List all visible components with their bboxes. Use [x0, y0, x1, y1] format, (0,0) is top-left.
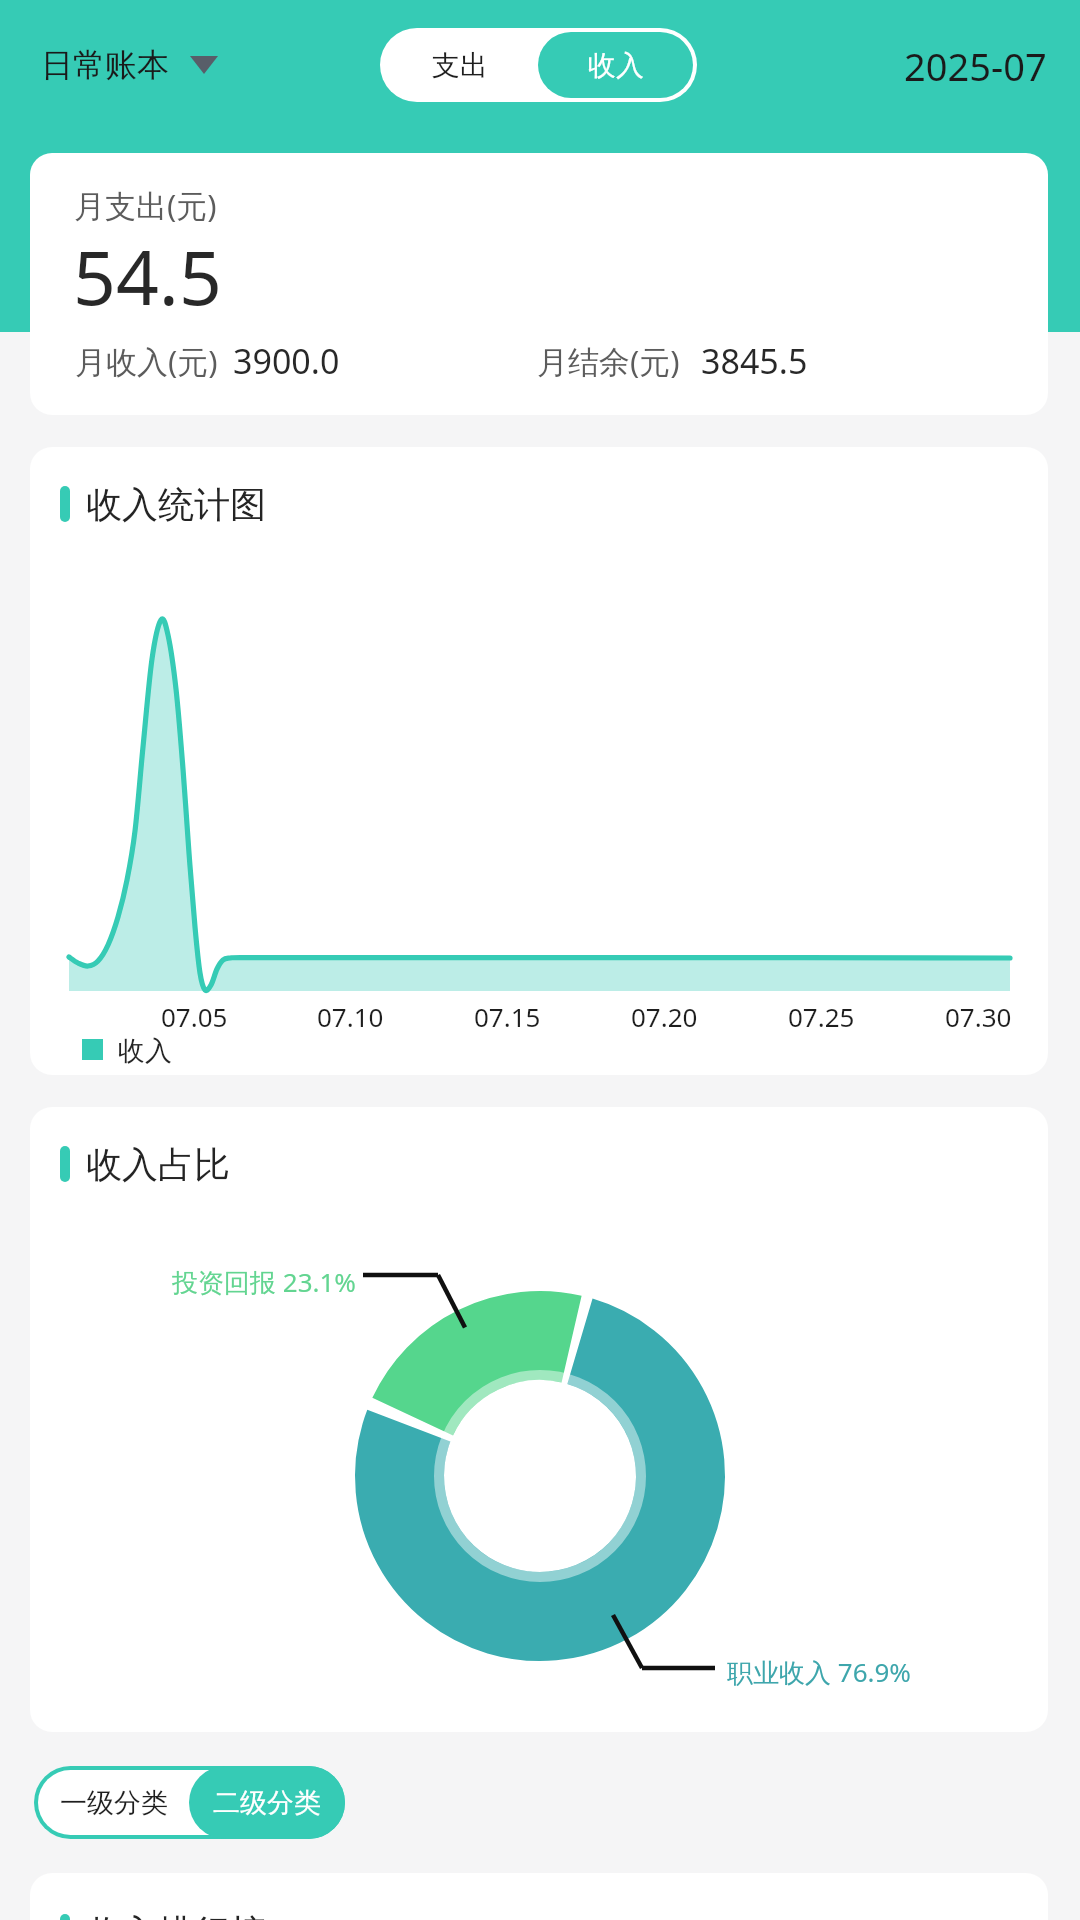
button[interactable]: 选择账本 日常账本 [41, 36, 218, 94]
staticText: 54.5 [73, 225, 222, 327]
staticText: 日常账本 [41, 45, 169, 85]
staticText: 月结余(元) [537, 340, 680, 382]
button[interactable]: 支出 [380, 28, 539, 102]
button[interactable]: 2025-07 [904, 38, 1047, 94]
staticText: 07.05 [161, 999, 228, 1034]
staticText: 3845.5 [701, 338, 808, 384]
staticText: 职业收入 76.9% [727, 1654, 911, 1690]
staticText: 支出 [432, 48, 488, 83]
staticText: 07.30 [945, 999, 1012, 1034]
staticText: 月收入(元) [75, 340, 218, 382]
staticText: 收入 [118, 1034, 172, 1064]
staticText: 07.25 [788, 999, 855, 1034]
staticText: 收入占比 [86, 1142, 230, 1186]
button[interactable]: 二级分类 [189, 1766, 345, 1839]
staticText: 07.15 [474, 999, 541, 1034]
staticText: 收入统计图 [86, 482, 266, 526]
button[interactable]: 一级分类 [38, 1770, 220, 1835]
staticText: 二级分类 [213, 1786, 321, 1820]
staticText: 投资回报 23.1% [172, 1264, 356, 1300]
staticText: 07.10 [317, 999, 384, 1034]
button[interactable]: 收入 [538, 32, 693, 98]
staticText: 2025-07 [904, 40, 1047, 92]
staticText: 收入 [588, 48, 644, 83]
staticText: 07.20 [631, 999, 698, 1034]
staticText: 一级分类 [60, 1786, 168, 1820]
staticText: 收入排行榜 [86, 1910, 266, 1920]
staticText: 3900.0 [233, 338, 340, 384]
staticText: 月支出(元) [74, 184, 217, 226]
